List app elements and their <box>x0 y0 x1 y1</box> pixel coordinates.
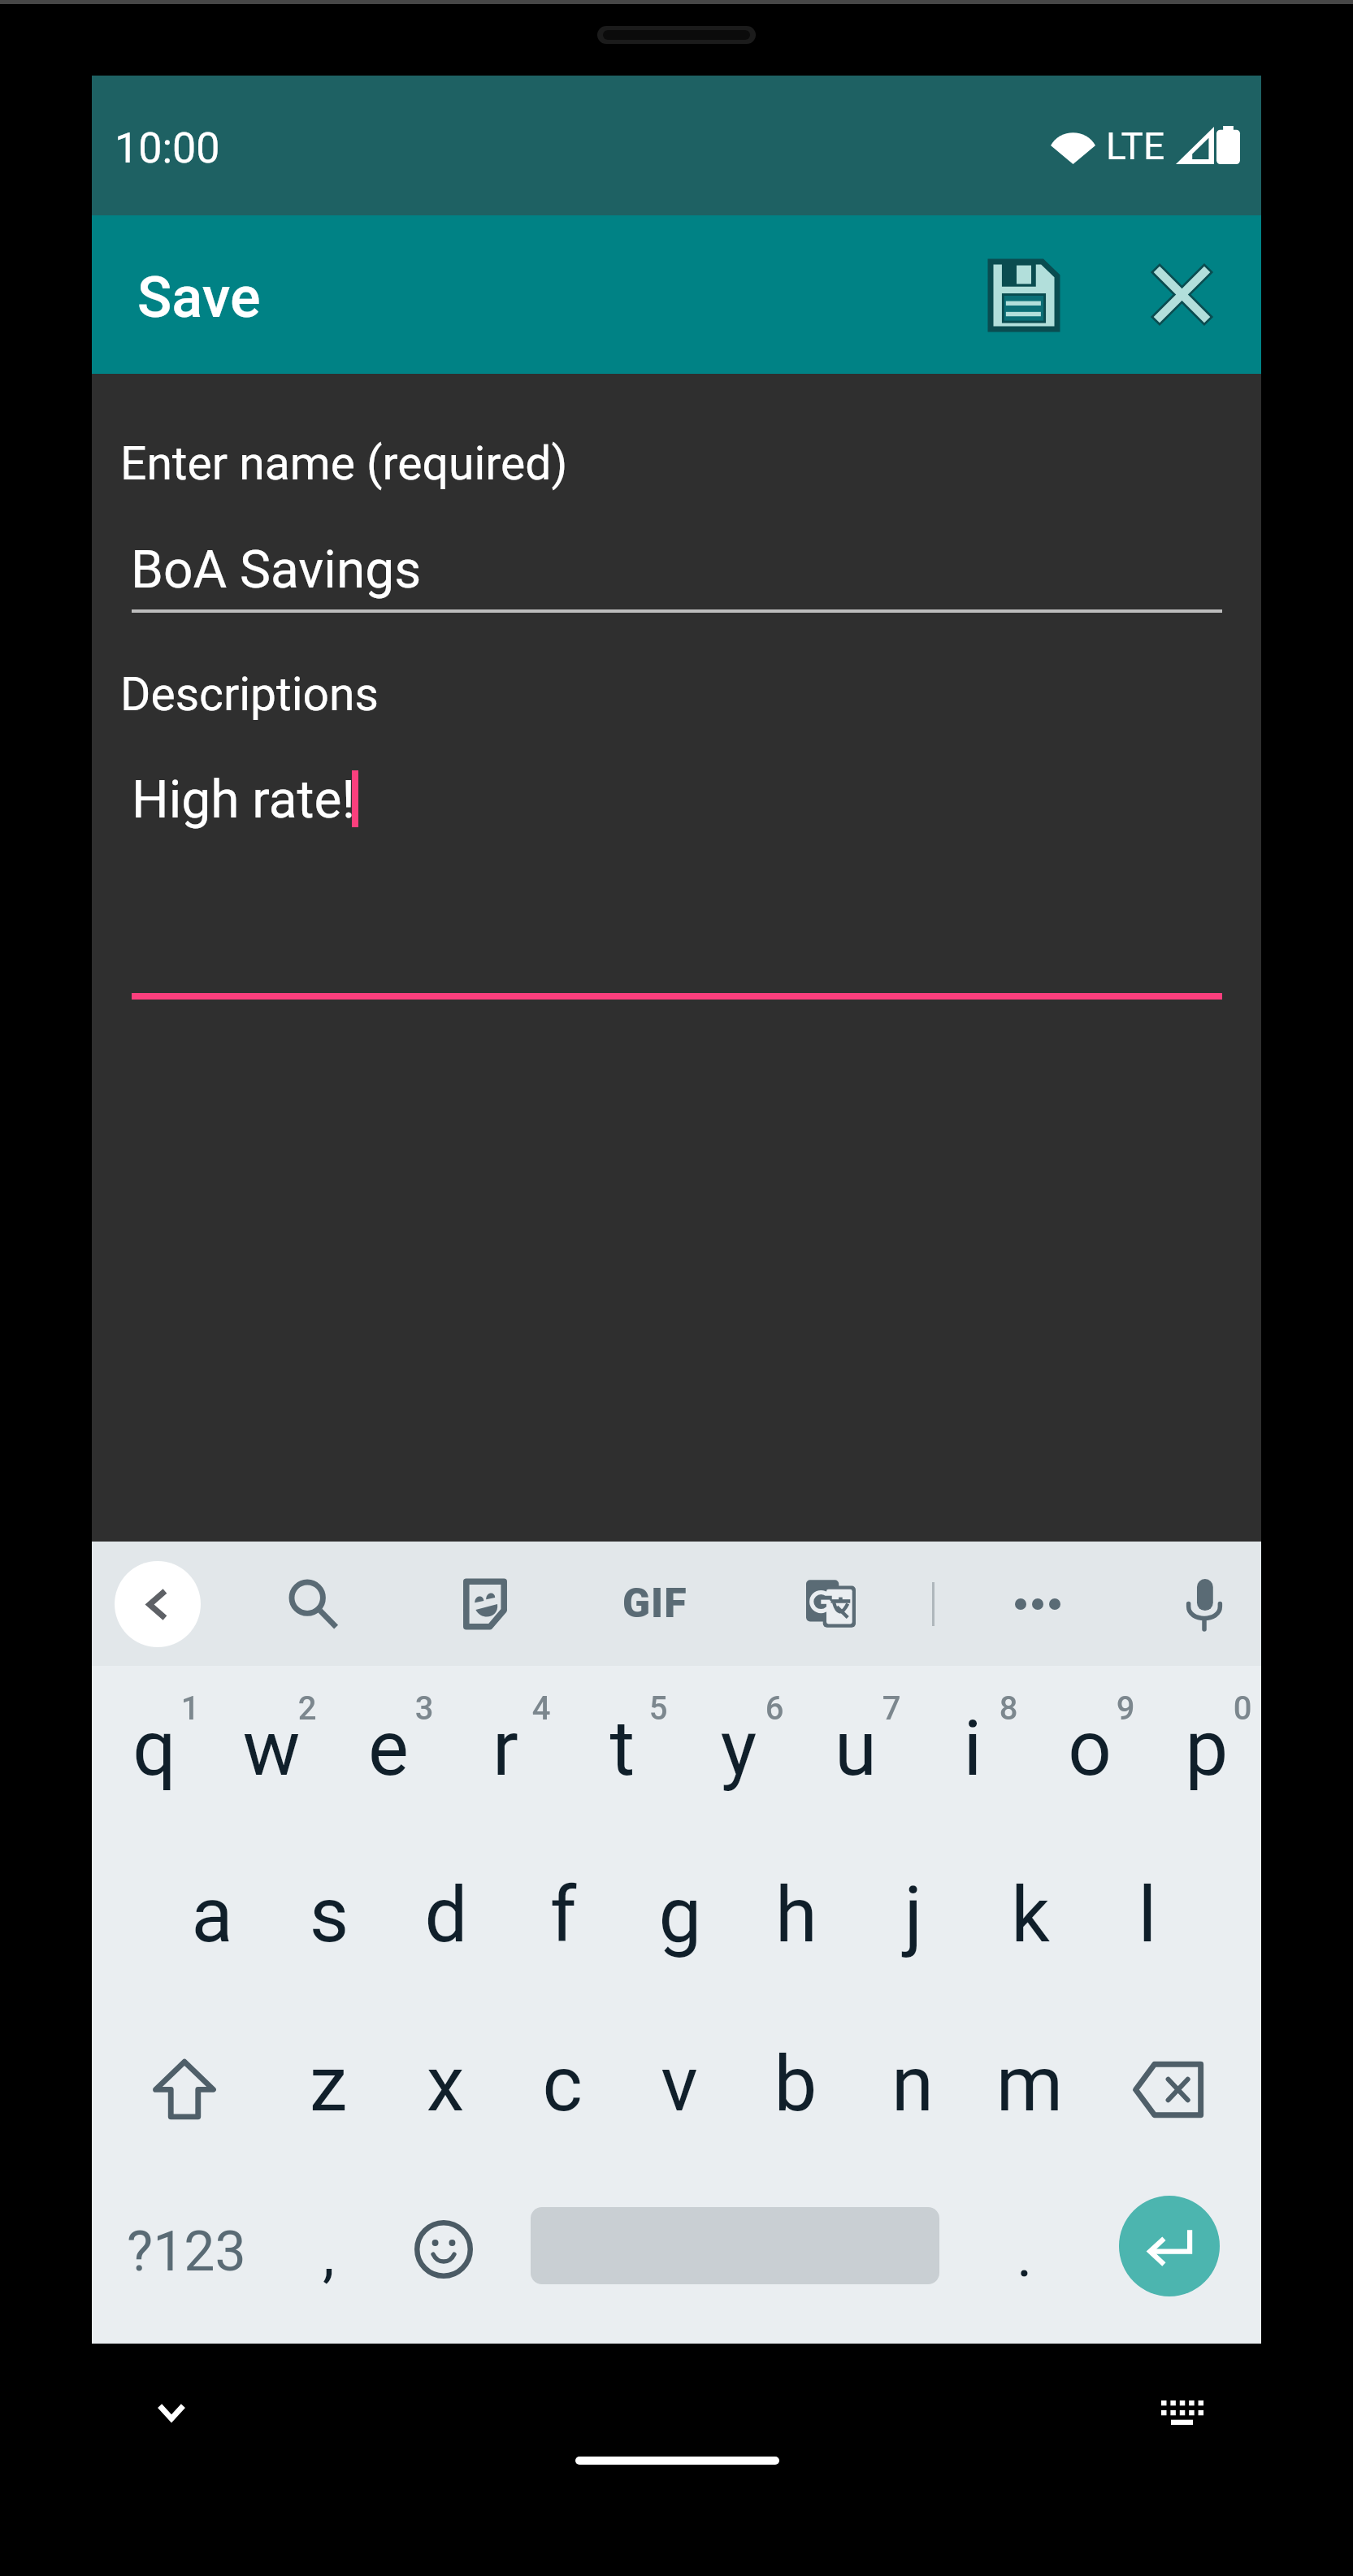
button[interactable]: Close <box>1121 234 1242 354</box>
staticText: 8 <box>960 1689 1057 1728</box>
staticText: k <box>982 1871 1079 1960</box>
button[interactable]: Translate <box>782 1542 879 1666</box>
button[interactable]: Shift <box>92 2006 277 2173</box>
button[interactable]: Emoji <box>392 2173 495 2344</box>
button[interactable]: u <box>797 1671 914 1838</box>
staticText: s <box>280 1871 378 1960</box>
button[interactable]: d <box>388 1838 505 2006</box>
button[interactable]: z <box>270 2006 387 2173</box>
staticText: y <box>690 1704 787 1793</box>
staticText: r <box>457 1704 554 1793</box>
staticText: o <box>1041 1704 1138 1793</box>
staticText: 2 <box>258 1689 356 1728</box>
button[interactable]: b <box>737 2006 854 2173</box>
staticText: . <box>1017 2220 1033 2291</box>
staticText: g <box>631 1871 729 1960</box>
staticText: f <box>514 1871 612 1960</box>
staticText: 1 <box>141 1689 239 1728</box>
button[interactable]: a <box>154 1838 271 2006</box>
staticText: BoA Savings <box>131 540 422 601</box>
button[interactable]: k <box>972 1838 1089 2006</box>
button[interactable]: j <box>855 1838 972 2006</box>
staticText: 4 <box>492 1689 590 1728</box>
button[interactable]: q <box>96 1671 213 1838</box>
button[interactable]: l <box>1089 1838 1206 2006</box>
staticText: ?123 <box>127 2219 246 2284</box>
staticText: a <box>163 1871 261 1960</box>
button[interactable]: Back <box>115 1561 201 1647</box>
staticText: 10:00 <box>115 124 220 173</box>
button[interactable]: Stickers <box>436 1542 534 1666</box>
button[interactable]: r <box>447 1671 564 1838</box>
staticText: l <box>1099 1871 1196 1960</box>
button[interactable]: Space <box>531 2207 939 2284</box>
staticText: v <box>631 2040 728 2129</box>
staticText: z <box>280 2040 377 2129</box>
staticText: 0 <box>1194 1689 1291 1728</box>
button[interactable]: x <box>387 2006 504 2173</box>
staticText: 6 <box>726 1689 823 1728</box>
staticText: c <box>514 2040 611 2129</box>
button[interactable]: c <box>504 2006 621 2173</box>
staticText: t <box>574 1704 671 1793</box>
button[interactable]: Hide keyboard <box>123 2363 220 2461</box>
staticText: d <box>397 1871 495 1960</box>
button[interactable]: o <box>1031 1671 1148 1838</box>
button[interactable]: h <box>738 1838 855 2006</box>
staticText: b <box>747 2040 844 2129</box>
staticText: n <box>864 2040 961 2129</box>
button[interactable]: Backspace <box>1076 2006 1261 2173</box>
staticText: 9 <box>1077 1689 1174 1728</box>
button[interactable]: GIF <box>598 1542 712 1666</box>
staticText: 7 <box>843 1689 940 1728</box>
button[interactable]: Change keyboard <box>1134 2364 1231 2461</box>
button[interactable]: Save <box>964 235 1084 355</box>
button[interactable]: More options <box>989 1542 1086 1666</box>
staticText: i <box>924 1704 1021 1793</box>
button[interactable]: f <box>505 1838 622 2006</box>
staticText: 5 <box>609 1689 707 1728</box>
button[interactable]: y <box>680 1671 797 1838</box>
button[interactable]: g <box>622 1838 739 2006</box>
staticText: u <box>807 1704 904 1793</box>
button[interactable]: m <box>971 2006 1088 2173</box>
staticText: 3 <box>375 1689 473 1728</box>
staticText: p <box>1158 1704 1255 1793</box>
staticText: w <box>223 1704 320 1793</box>
button[interactable]: Voice input <box>1156 1542 1253 1666</box>
staticText: x <box>397 2040 494 2129</box>
staticText: Enter name (required) <box>120 436 568 491</box>
button[interactable]: Search <box>265 1542 362 1666</box>
staticText: Descriptions <box>120 667 379 722</box>
button[interactable]: Enter <box>1119 2196 1220 2296</box>
staticText: GIF <box>622 1580 687 1628</box>
staticText: q <box>106 1704 203 1793</box>
staticText: Save <box>137 264 261 331</box>
button[interactable]: w <box>213 1671 330 1838</box>
staticText: e <box>340 1704 437 1793</box>
button[interactable]: v <box>621 2006 738 2173</box>
staticText: j <box>865 1871 962 1960</box>
staticText: m <box>981 2040 1078 2129</box>
button[interactable]: e <box>330 1671 447 1838</box>
button[interactable]: . <box>970 2173 1073 2344</box>
staticText: High rate! <box>132 770 355 830</box>
staticText: h <box>748 1871 845 1960</box>
button[interactable]: i <box>914 1671 1031 1838</box>
staticText: , <box>323 2219 335 2290</box>
staticText: LTE <box>1106 124 1165 168</box>
button[interactable]: t <box>564 1671 681 1838</box>
button[interactable]: n <box>854 2006 971 2173</box>
button[interactable]: , <box>277 2173 379 2344</box>
button[interactable]: p <box>1148 1671 1265 1838</box>
button[interactable]: s <box>271 1838 388 2006</box>
button[interactable]: ?123 <box>92 2173 277 2344</box>
